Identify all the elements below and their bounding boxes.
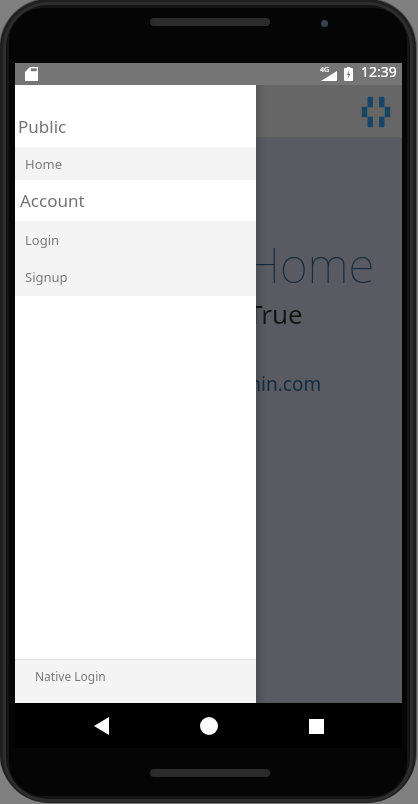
staticText: Account — [20, 189, 85, 212]
staticText: 4G — [320, 65, 330, 75]
staticText: True — [248, 296, 303, 331]
button[interactable]: Signup — [15, 258, 256, 296]
button[interactable]: Home — [15, 147, 256, 180]
button[interactable]: Native Login — [15, 660, 256, 703]
button[interactable]: Home — [187, 704, 231, 748]
staticText: Native Login — [35, 668, 106, 684]
staticText: Home — [25, 155, 62, 173]
staticText: Public — [18, 115, 67, 138]
button[interactable]: Loading — [356, 91, 396, 131]
staticText: 12:39 — [361, 62, 397, 81]
button[interactable]: Back — [79, 704, 123, 748]
button[interactable]: Recent apps — [294, 704, 338, 748]
staticText: admin.com — [221, 371, 322, 397]
button[interactable]: Login — [15, 221, 256, 258]
staticText: Signup — [25, 268, 68, 286]
staticText: Home — [246, 232, 375, 297]
staticText: Login — [25, 231, 60, 249]
